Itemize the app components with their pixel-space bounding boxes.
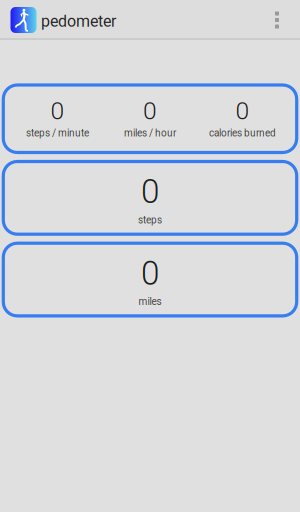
button[interactable]: More options — [254, 0, 300, 39]
staticText: calories burned — [209, 127, 276, 139]
staticText: miles — [138, 296, 161, 307]
button[interactable]: pedometer — [0, 0, 116, 39]
staticText: 0 — [143, 96, 157, 125]
staticText: 0 — [141, 172, 159, 211]
staticText: steps / minute — [26, 127, 89, 139]
staticText: steps — [138, 214, 162, 226]
staticText: 0 — [235, 96, 249, 125]
staticText: pedometer — [41, 12, 116, 31]
staticText: miles / hour — [124, 127, 176, 139]
staticText: 0 — [50, 96, 64, 125]
staticText: 0 — [141, 254, 159, 293]
